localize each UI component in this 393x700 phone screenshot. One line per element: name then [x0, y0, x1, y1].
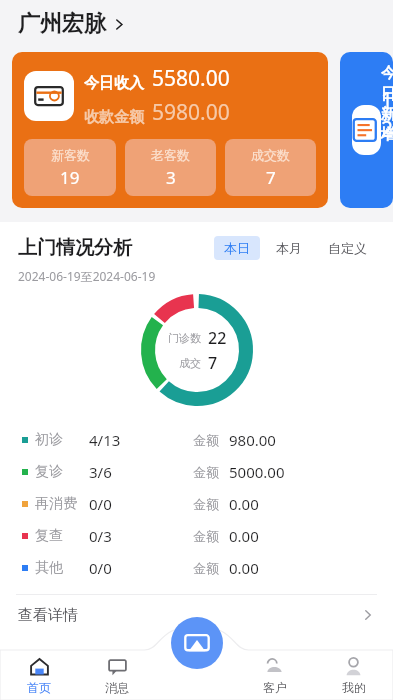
staticText: 0/3: [89, 526, 193, 546]
staticText: 今日收入: [84, 74, 144, 93]
staticText: 老客数: [151, 147, 190, 163]
staticText: 19: [60, 166, 80, 189]
button[interactable]: 首页: [0, 650, 78, 700]
button[interactable]: 广州宏脉: [0, 0, 393, 48]
button[interactable]: 复诊: [0, 456, 393, 488]
button[interactable]: 我的: [314, 650, 393, 700]
button[interactable]: Scan: [171, 617, 223, 669]
staticText: 0/0: [89, 558, 193, 578]
staticText: 金额: [193, 464, 219, 480]
staticText: 再消费: [35, 495, 89, 513]
staticText: 复查: [35, 527, 89, 545]
staticText: 5000.00: [229, 462, 285, 482]
button[interactable]: 再消费: [0, 488, 393, 520]
staticText: 7: [208, 352, 230, 374]
staticText: 金额: [193, 496, 219, 512]
staticText: 本日: [224, 240, 250, 256]
button[interactable]: 本日: [214, 236, 260, 260]
staticText: 门诊数: [165, 331, 201, 345]
button[interactable]: 复查: [0, 520, 393, 552]
staticText: 0.00: [229, 494, 259, 514]
staticText: 5580.00: [152, 64, 230, 93]
button[interactable]: 消息: [78, 650, 156, 700]
staticText: 本月: [276, 240, 302, 256]
button[interactable]: 今日收入: [12, 52, 328, 208]
staticText: 金额: [193, 528, 219, 544]
staticText: 客户: [263, 680, 287, 695]
staticText: 上门情况分析: [18, 236, 132, 260]
staticText: 查看详情: [18, 606, 78, 625]
button[interactable]: 自定义: [318, 236, 377, 260]
button[interactable]: 本月: [266, 236, 312, 260]
staticText: 广州宏脉: [18, 10, 106, 38]
staticText: 金额: [193, 432, 219, 448]
staticText: 新客数: [51, 147, 90, 163]
button[interactable]: 查看详情: [0, 595, 393, 635]
staticText: 我的: [342, 680, 366, 695]
staticText: 22: [208, 327, 230, 349]
staticText: 金额: [193, 560, 219, 576]
staticText: 0.00: [229, 526, 259, 546]
button[interactable]: 成交数: [225, 139, 316, 196]
staticText: 成交: [165, 356, 201, 370]
button[interactable]: 初诊: [0, 424, 393, 456]
staticText: 消息: [105, 680, 129, 695]
staticText: 复诊: [35, 463, 89, 481]
staticText: 成交数: [251, 147, 290, 163]
staticText: 0.00: [229, 558, 259, 578]
staticText: 3/6: [89, 462, 193, 482]
staticText: 初诊: [35, 431, 89, 449]
button[interactable]: 今日新增: [340, 52, 393, 208]
staticText: 自定义: [328, 240, 367, 256]
staticText: 首页: [27, 680, 51, 695]
staticText: 4/13: [89, 430, 193, 450]
button[interactable]: 客户: [235, 650, 314, 700]
staticText: 3: [166, 166, 176, 189]
staticText: 0/0: [89, 494, 193, 514]
staticText: 5980.00: [152, 98, 230, 127]
staticText: 其他: [35, 559, 89, 577]
staticText: 980.00: [229, 430, 276, 450]
staticText: 收款金额: [84, 108, 144, 127]
button[interactable]: 老客数: [125, 139, 216, 196]
button[interactable]: 其他: [0, 552, 393, 584]
staticText: 7: [266, 166, 276, 189]
staticText: 2024-06-19至2024-06-19: [18, 268, 156, 284]
button[interactable]: 新客数: [24, 139, 116, 196]
